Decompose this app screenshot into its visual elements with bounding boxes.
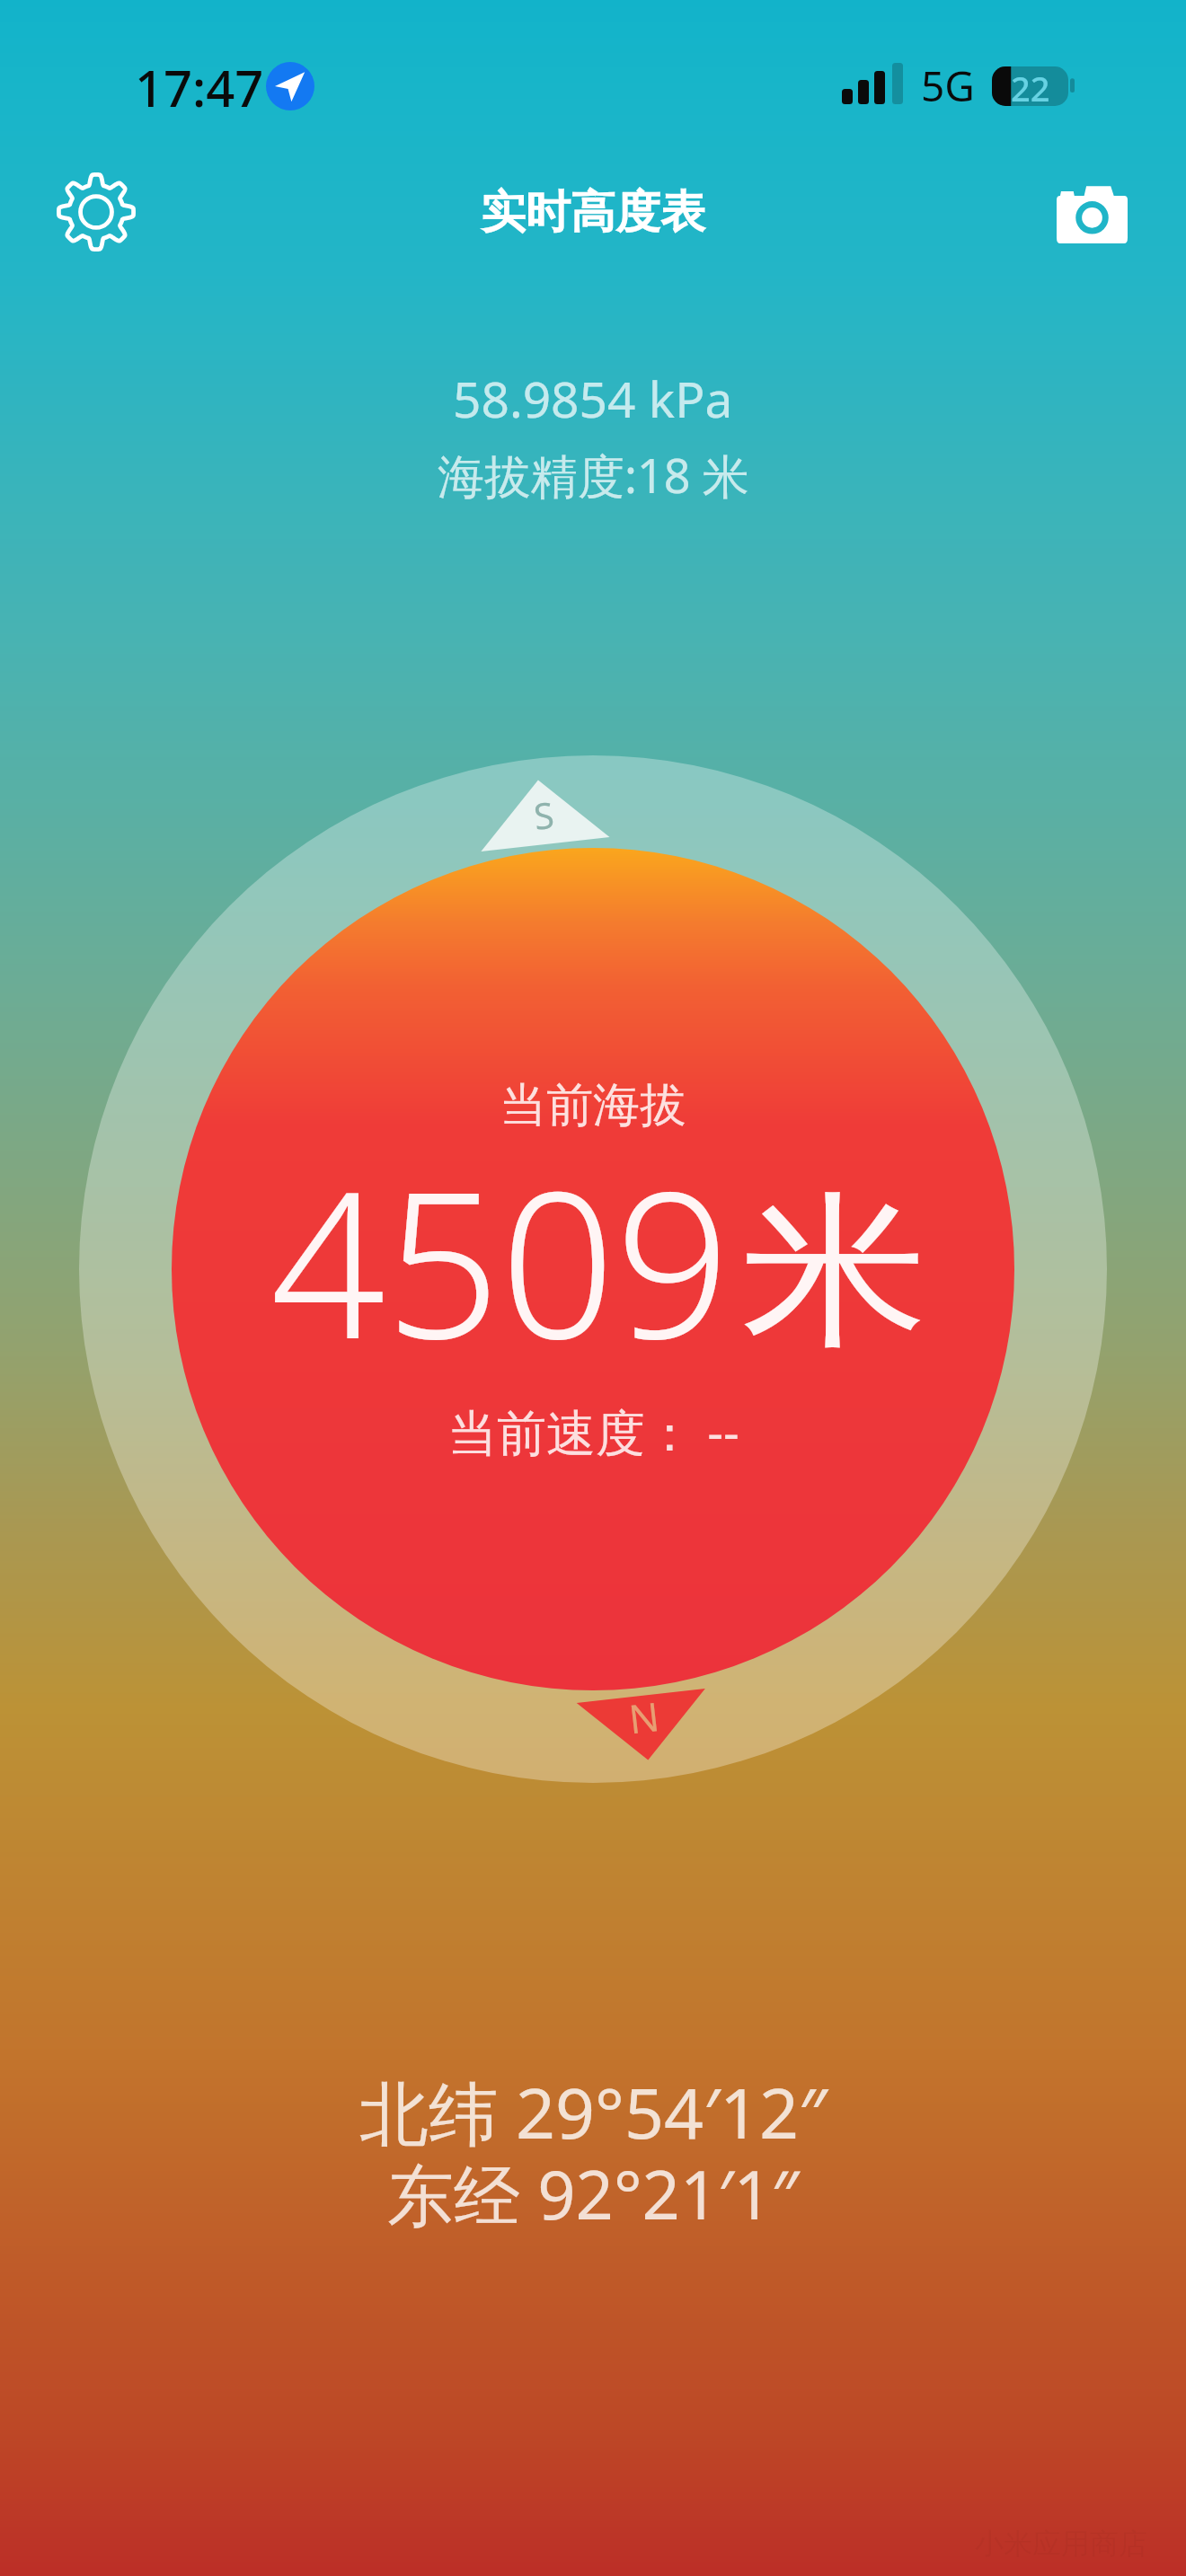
button[interactable]: 当前海拔 — [172, 848, 1014, 1690]
staticText: 实时高度表 — [0, 184, 1186, 241]
staticText: 当前海拔 — [500, 1076, 686, 1135]
staticText: 东经 92°21′1″ — [387, 2148, 799, 2239]
staticText: 17:47 — [135, 53, 264, 121]
staticText: 22 — [1011, 65, 1050, 111]
staticText: S — [531, 789, 556, 840]
staticText: 米 — [741, 1169, 928, 1377]
staticText: N — [626, 1689, 662, 1746]
staticText: 北纬 29°54′12″ — [359, 2065, 828, 2159]
button[interactable]: Settings — [42, 158, 150, 266]
staticText: 4509 — [270, 1124, 730, 1398]
staticText: 当前速度： -- — [447, 1398, 739, 1465]
staticText: 5G — [921, 57, 975, 114]
staticText: 58.9854 kPa — [453, 365, 733, 432]
staticText: 海拔精度:18 米 — [438, 443, 749, 507]
button[interactable]: Camera — [1038, 159, 1146, 267]
